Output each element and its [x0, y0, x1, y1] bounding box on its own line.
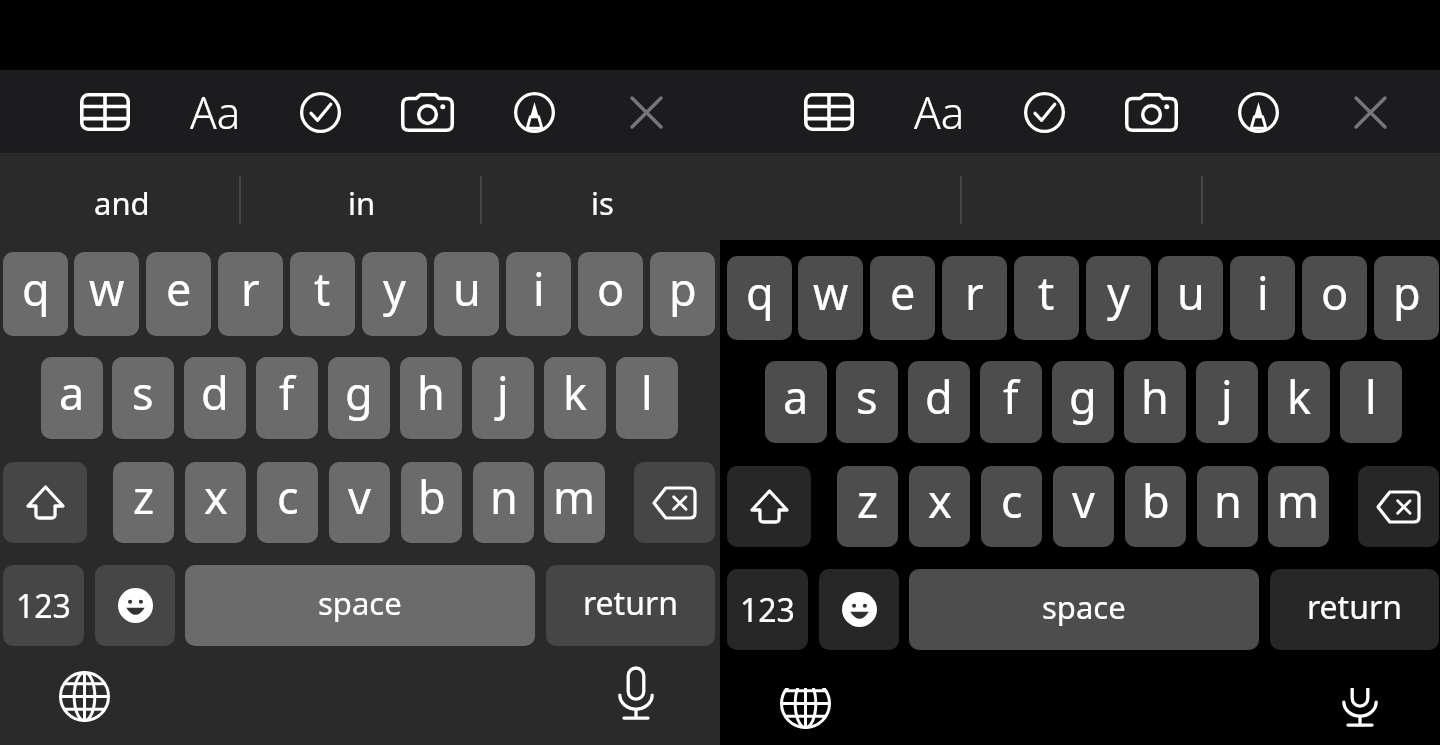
button[interactable]: k: [1268, 361, 1330, 443]
staticText: r: [965, 262, 984, 323]
staticText: p: [1393, 262, 1421, 323]
button[interactable]: a: [41, 357, 103, 439]
button[interactable]: v: [1053, 466, 1114, 547]
button[interactable]: 123: [3, 565, 84, 646]
staticText: is: [591, 182, 614, 224]
staticText: i: [1257, 262, 1269, 323]
button[interactable]: Markup: [498, 76, 570, 148]
button[interactable]: Backspace: [1358, 466, 1439, 547]
staticText: space: [1042, 586, 1126, 628]
button[interactable]: b: [1125, 466, 1186, 547]
button[interactable]: i: [1230, 256, 1295, 340]
button[interactable]: z: [113, 462, 174, 543]
button[interactable]: Change keyboard: [773, 688, 837, 732]
button[interactable]: e: [146, 252, 211, 336]
staticText: d: [201, 362, 229, 423]
button[interactable]: q: [727, 256, 792, 340]
button[interactable]: m: [544, 462, 605, 543]
button[interactable]: Checklist: [284, 76, 356, 148]
button[interactable]: n: [1197, 466, 1258, 547]
button[interactable]: l: [1340, 361, 1402, 443]
button[interactable]: y: [362, 252, 427, 336]
staticText: u: [453, 258, 481, 319]
button[interactable]: r: [942, 256, 1007, 340]
button[interactable]: in: [242, 162, 482, 244]
button[interactable]: g: [1052, 361, 1114, 443]
button[interactable]: Shift: [727, 466, 811, 547]
staticText: q: [22, 258, 50, 319]
button[interactable]: e: [870, 256, 935, 340]
button[interactable]: c: [257, 462, 318, 543]
staticText: p: [669, 258, 697, 319]
button[interactable]: Text format: [179, 76, 251, 148]
button[interactable]: v: [329, 462, 390, 543]
button[interactable]: q: [3, 252, 68, 336]
button[interactable]: Markup: [1222, 76, 1294, 148]
button[interactable]: space: [185, 565, 535, 646]
button[interactable]: Emoji: [95, 565, 175, 646]
button[interactable]: Change keyboard: [52, 664, 116, 728]
button[interactable]: o: [1302, 256, 1367, 340]
button[interactable]: n: [473, 462, 534, 543]
button[interactable]: 123: [727, 569, 808, 650]
button[interactable]: u: [434, 252, 499, 336]
button[interactable]: a: [765, 361, 827, 443]
button[interactable]: w: [798, 256, 863, 340]
button[interactable]: Emoji: [819, 569, 899, 650]
button[interactable]: Backspace: [634, 462, 715, 543]
button[interactable]: Camera: [391, 76, 463, 148]
button[interactable]: f: [256, 357, 318, 439]
button[interactable]: Table: [69, 76, 141, 148]
button[interactable]: l: [616, 357, 678, 439]
button[interactable]: and: [2, 162, 242, 244]
button[interactable]: b: [401, 462, 462, 543]
button[interactable]: p: [1374, 256, 1439, 340]
button[interactable]: d: [184, 357, 246, 439]
button[interactable]: j: [1196, 361, 1258, 443]
button[interactable]: s: [836, 361, 898, 443]
button[interactable]: t: [290, 252, 355, 336]
button[interactable]: Table: [793, 76, 865, 148]
button[interactable]: return: [546, 565, 715, 646]
button[interactable]: Close: [1334, 76, 1406, 148]
staticText: g: [345, 362, 373, 423]
button[interactable]: h: [1124, 361, 1186, 443]
staticText: s: [132, 362, 154, 423]
staticText: e: [166, 258, 192, 319]
button[interactable]: Checklist: [1008, 76, 1080, 148]
button[interactable]: r: [218, 252, 283, 336]
button[interactable]: z: [837, 466, 898, 547]
button[interactable]: u: [1158, 256, 1223, 340]
button[interactable]: o: [578, 252, 643, 336]
staticText: o: [597, 258, 625, 319]
button[interactable]: Camera: [1115, 76, 1187, 148]
button[interactable]: Close: [610, 76, 682, 148]
button[interactable]: space: [909, 569, 1259, 650]
staticText: 123: [16, 584, 71, 628]
button[interactable]: x: [185, 462, 246, 543]
button[interactable]: p: [650, 252, 715, 336]
button[interactable]: h: [400, 357, 462, 439]
button[interactable]: m: [1268, 466, 1329, 547]
staticText: b: [1142, 470, 1170, 531]
button[interactable]: w: [74, 252, 139, 336]
button[interactable]: j: [472, 357, 534, 439]
button[interactable]: y: [1086, 256, 1151, 340]
button[interactable]: g: [328, 357, 390, 439]
button[interactable]: c: [981, 466, 1042, 547]
button[interactable]: x: [909, 466, 970, 547]
button[interactable]: is: [482, 162, 720, 244]
button[interactable]: Text format: [903, 76, 975, 148]
button[interactable]: t: [1014, 256, 1079, 340]
button[interactable]: i: [506, 252, 571, 336]
button[interactable]: s: [112, 357, 174, 439]
button[interactable]: d: [908, 361, 970, 443]
button[interactable]: Shift: [3, 462, 87, 543]
staticText: u: [1177, 262, 1205, 323]
button[interactable]: Dictation: [1328, 688, 1392, 729]
button[interactable]: Dictation: [604, 660, 668, 728]
button[interactable]: k: [544, 357, 606, 439]
staticText: in: [348, 182, 376, 224]
button[interactable]: return: [1270, 569, 1439, 650]
button[interactable]: f: [980, 361, 1042, 443]
